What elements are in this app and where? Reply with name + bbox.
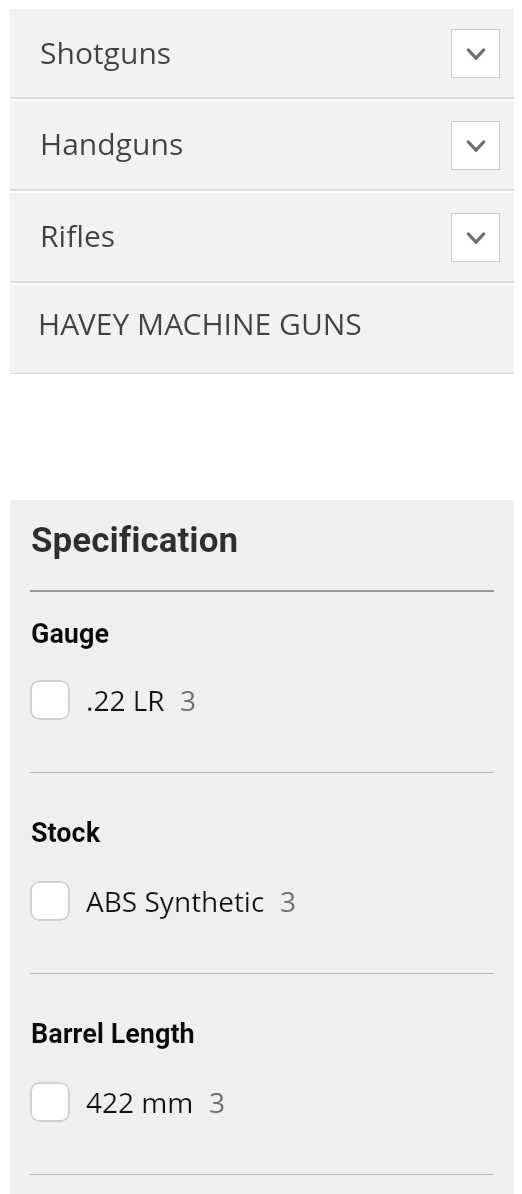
staticText: Stock: [31, 817, 101, 849]
staticText: ABS Synthetic: [86, 882, 265, 920]
button[interactable]: Expand Rifles: [451, 213, 500, 262]
staticText: Shotguns: [40, 32, 172, 73]
staticText: Rifles: [40, 215, 116, 256]
staticText: 3: [180, 681, 197, 719]
button[interactable]: .22 LR: [10, 670, 514, 730]
staticText: HAVEY MACHINE GUNS: [38, 303, 362, 344]
staticText: 3: [209, 1083, 226, 1121]
button[interactable]: 422 mm: [10, 1072, 514, 1132]
button[interactable]: Rifles: [10, 193, 514, 281]
staticText: Handguns: [40, 123, 184, 164]
staticText: Gauge: [31, 618, 110, 650]
button[interactable]: Handguns: [10, 101, 514, 189]
staticText: Specification: [31, 520, 239, 561]
button[interactable]: Shotguns: [10, 9, 514, 97]
staticText: 422 mm: [86, 1083, 194, 1121]
button[interactable]: ABS Synthetic: [10, 871, 514, 931]
staticText: Barrel Length: [31, 1018, 195, 1050]
button[interactable]: Expand Handguns: [451, 121, 500, 170]
button[interactable]: Expand Shotguns: [451, 29, 500, 78]
staticText: .22 LR: [86, 681, 165, 719]
staticText: 3: [280, 882, 297, 920]
button[interactable]: HAVEY MACHINE GUNS: [10, 285, 514, 373]
